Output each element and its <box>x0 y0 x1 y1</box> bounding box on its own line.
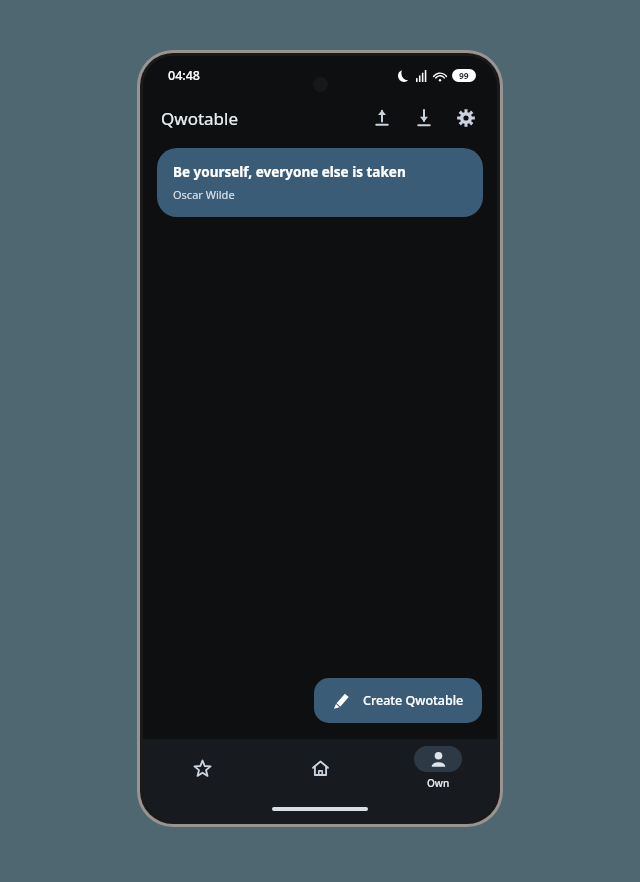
button[interactable]: Settings <box>449 101 483 135</box>
button[interactable]: Favorites <box>143 739 261 797</box>
button[interactable]: Be yourself, everyone else is taken <box>157 148 483 217</box>
button[interactable]: Home <box>261 739 379 797</box>
staticText: Own <box>427 776 450 790</box>
button[interactable]: Upload <box>365 101 399 135</box>
staticText: Create Qwotable <box>363 692 464 709</box>
button[interactable]: Create Qwotable <box>314 678 482 723</box>
staticText: Be yourself, everyone else is taken <box>173 163 406 181</box>
button[interactable]: Own <box>379 739 497 797</box>
staticText: 99 <box>459 70 469 82</box>
staticText: 04:48 <box>168 67 201 84</box>
staticText: Qwotable <box>161 107 239 130</box>
button[interactable]: Download <box>407 101 441 135</box>
staticText: Oscar Wilde <box>173 187 235 202</box>
